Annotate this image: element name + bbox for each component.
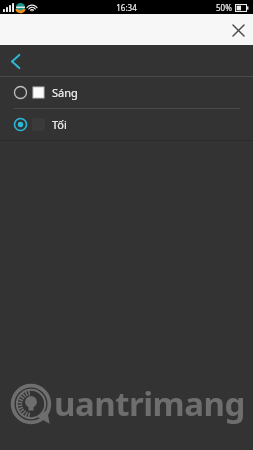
button[interactable]: Back bbox=[0, 46, 30, 76]
button[interactable]: Sáng bbox=[0, 77, 253, 108]
staticText: Tối bbox=[52, 117, 67, 132]
staticText: uantrimang bbox=[54, 381, 245, 426]
staticText: 50% bbox=[216, 2, 232, 13]
staticText: 16:34 bbox=[116, 2, 137, 13]
staticText: Sáng bbox=[52, 85, 78, 100]
button[interactable]: Close bbox=[223, 15, 253, 45]
button[interactable]: Tối bbox=[0, 109, 253, 140]
